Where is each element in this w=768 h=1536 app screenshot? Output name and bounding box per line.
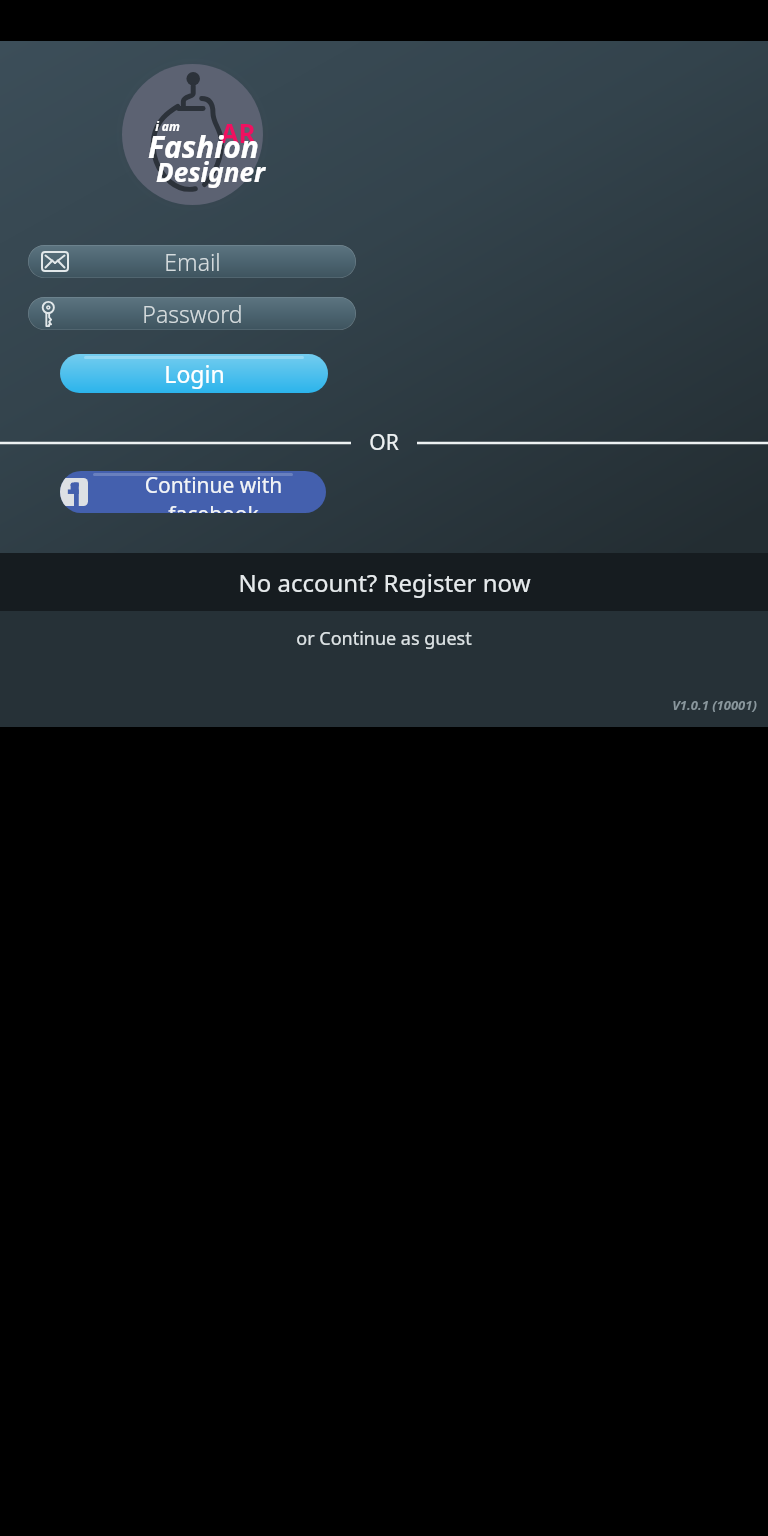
staticText: Email (164, 246, 221, 277)
button[interactable]: Email (28, 245, 356, 278)
staticText: OR (369, 428, 399, 457)
other: Email (42, 252, 68, 271)
staticText: i am (155, 118, 180, 134)
button[interactable]: Login (60, 354, 328, 393)
button[interactable]: No account? Register now (0, 553, 768, 611)
staticText: or Continue as guest (296, 626, 472, 651)
staticText: Designer (156, 154, 265, 189)
button[interactable]: or Continue as guest (296, 626, 472, 651)
staticText: Login (164, 358, 225, 389)
staticText: No account? Register now (238, 566, 531, 599)
staticText: V1.0.1 (10001) (672, 696, 757, 714)
staticText: Continue with facebook (101, 471, 326, 513)
staticText: AR (220, 115, 256, 150)
other: Password (42, 300, 56, 328)
button[interactable]: Password (28, 297, 356, 330)
staticText: Fashion (148, 126, 259, 167)
button[interactable]: Continue with facebook (60, 471, 326, 513)
staticText: Password (142, 298, 243, 329)
